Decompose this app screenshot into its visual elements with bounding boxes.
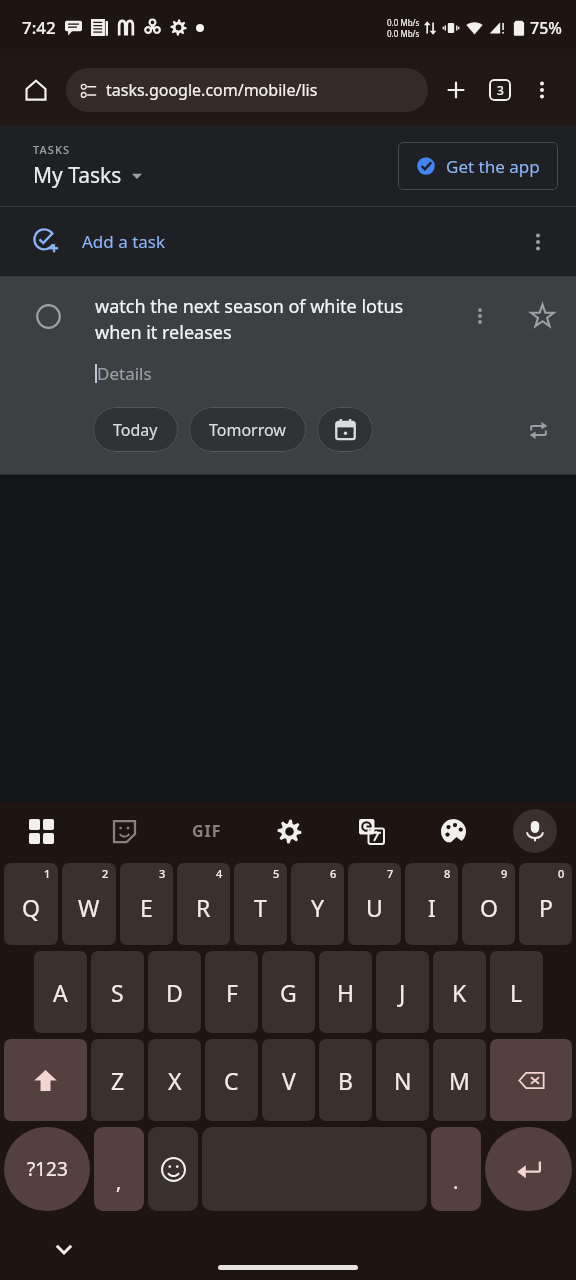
button[interactable]: ?123: [4, 1127, 90, 1211]
button[interactable]: 7: [348, 863, 401, 945]
staticText: 3: [159, 866, 166, 881]
staticText: V: [282, 1065, 296, 1096]
staticText: A: [53, 977, 68, 1008]
button[interactable]: More options: [522, 70, 562, 110]
button[interactable]: Emoji: [148, 1127, 198, 1211]
staticText: Tomorrow: [209, 419, 286, 441]
button[interactable]: Mark complete: [30, 298, 66, 334]
staticText: 1: [44, 866, 51, 881]
staticText: 2: [102, 866, 109, 881]
button[interactable]: Add a task: [0, 207, 576, 276]
button[interactable]: Z: [91, 1039, 144, 1121]
button[interactable]: List options: [518, 222, 558, 262]
staticText: U: [366, 892, 383, 923]
button[interactable]: 5: [234, 863, 287, 945]
staticText: 4: [216, 866, 223, 881]
staticText: Details: [97, 362, 152, 385]
button[interactable]: K: [433, 951, 486, 1033]
button[interactable]: ,: [94, 1127, 144, 1211]
button[interactable]: Pick a date: [317, 407, 373, 452]
staticText: K: [452, 977, 467, 1008]
button[interactable]: Today: [93, 407, 178, 452]
button[interactable]: 1: [4, 863, 58, 945]
button[interactable]: 6: [291, 863, 344, 945]
button[interactable]: J: [376, 951, 429, 1033]
button[interactable]: Stickers: [83, 802, 166, 860]
button[interactable]: Tabs: 3: [478, 68, 522, 112]
staticText: 0: [558, 866, 565, 881]
staticText: tasks.google.com/mobile/lis: [106, 79, 318, 101]
button[interactable]: B: [319, 1039, 372, 1121]
button[interactable]: 8: [405, 863, 458, 945]
button[interactable]: .: [431, 1127, 481, 1211]
button[interactable]: L: [490, 951, 543, 1033]
button[interactable]: M: [433, 1039, 486, 1121]
button[interactable]: Voice input: [494, 802, 576, 860]
button[interactable]: 3: [120, 863, 173, 945]
button[interactable]: N: [376, 1039, 429, 1121]
staticText: Get the app: [446, 155, 540, 178]
button[interactable]: Hide keyboard: [44, 1229, 84, 1269]
button[interactable]: D: [148, 951, 201, 1033]
staticText: L: [510, 977, 523, 1008]
button[interactable]: Backspace: [490, 1039, 572, 1121]
staticText: GIF: [192, 820, 222, 842]
button[interactable]: tasks.google.com/mobile/lis: [66, 68, 428, 112]
button[interactable]: S: [91, 951, 144, 1033]
button[interactable]: Clipboard: [0, 802, 83, 860]
button[interactable]: G: [262, 951, 315, 1033]
button[interactable]: Theme: [412, 802, 494, 860]
staticText: W: [78, 892, 100, 923]
button[interactable]: Task options: [458, 294, 502, 338]
staticText: X: [168, 1065, 182, 1096]
staticText: 75%: [530, 17, 562, 39]
staticText: I: [428, 892, 436, 923]
button[interactable]: My Tasks: [33, 161, 143, 190]
button[interactable]: Shift: [4, 1039, 87, 1121]
staticText: F: [226, 977, 238, 1008]
staticText: Y: [311, 892, 325, 923]
staticText: Add a task: [82, 230, 166, 253]
staticText: B: [338, 1065, 353, 1096]
button[interactable]: Home: [14, 68, 58, 112]
button[interactable]: Tomorrow: [189, 407, 306, 452]
button[interactable]: F: [205, 951, 258, 1033]
staticText: 5: [273, 866, 280, 881]
button[interactable]: Settings: [248, 802, 330, 860]
staticText: ?123: [27, 1156, 68, 1182]
staticText: R: [196, 892, 211, 923]
button[interactable]: X: [148, 1039, 201, 1121]
staticText: watch the next season of white lotus whe…: [95, 294, 452, 345]
button[interactable]: 0: [519, 863, 572, 945]
staticText: T: [254, 892, 267, 923]
button[interactable]: Star task: [520, 294, 564, 338]
staticText: H: [337, 977, 355, 1008]
button[interactable]: Get the app: [398, 142, 558, 190]
button[interactable]: A: [34, 951, 87, 1033]
button[interactable]: New tab: [434, 68, 478, 112]
button[interactable]: 9: [462, 863, 515, 945]
staticText: My Tasks: [33, 161, 122, 190]
staticText: 8: [444, 866, 451, 881]
button[interactable]: C: [205, 1039, 258, 1121]
button[interactable]: Repeat: [518, 410, 558, 450]
staticText: 0.0 Mb/s: [387, 28, 420, 39]
staticText: Q: [22, 892, 40, 923]
button[interactable]: 4: [177, 863, 230, 945]
staticText: 3: [497, 82, 504, 98]
button[interactable]: GIF: [166, 802, 248, 860]
button[interactable]: H: [319, 951, 372, 1033]
staticText: D: [166, 977, 183, 1008]
staticText: ,: [116, 1168, 122, 1195]
button[interactable]: V: [262, 1039, 315, 1121]
button[interactable]: Translate: [330, 802, 412, 860]
staticText: 7: [387, 866, 394, 881]
staticText: N: [394, 1065, 412, 1096]
button[interactable]: Enter: [485, 1127, 572, 1211]
staticText: J: [399, 977, 406, 1008]
button[interactable]: 2: [62, 863, 116, 945]
staticText: 0.0 Mb/s: [387, 17, 420, 28]
staticText: O: [480, 892, 498, 923]
staticText: Z: [111, 1065, 125, 1096]
